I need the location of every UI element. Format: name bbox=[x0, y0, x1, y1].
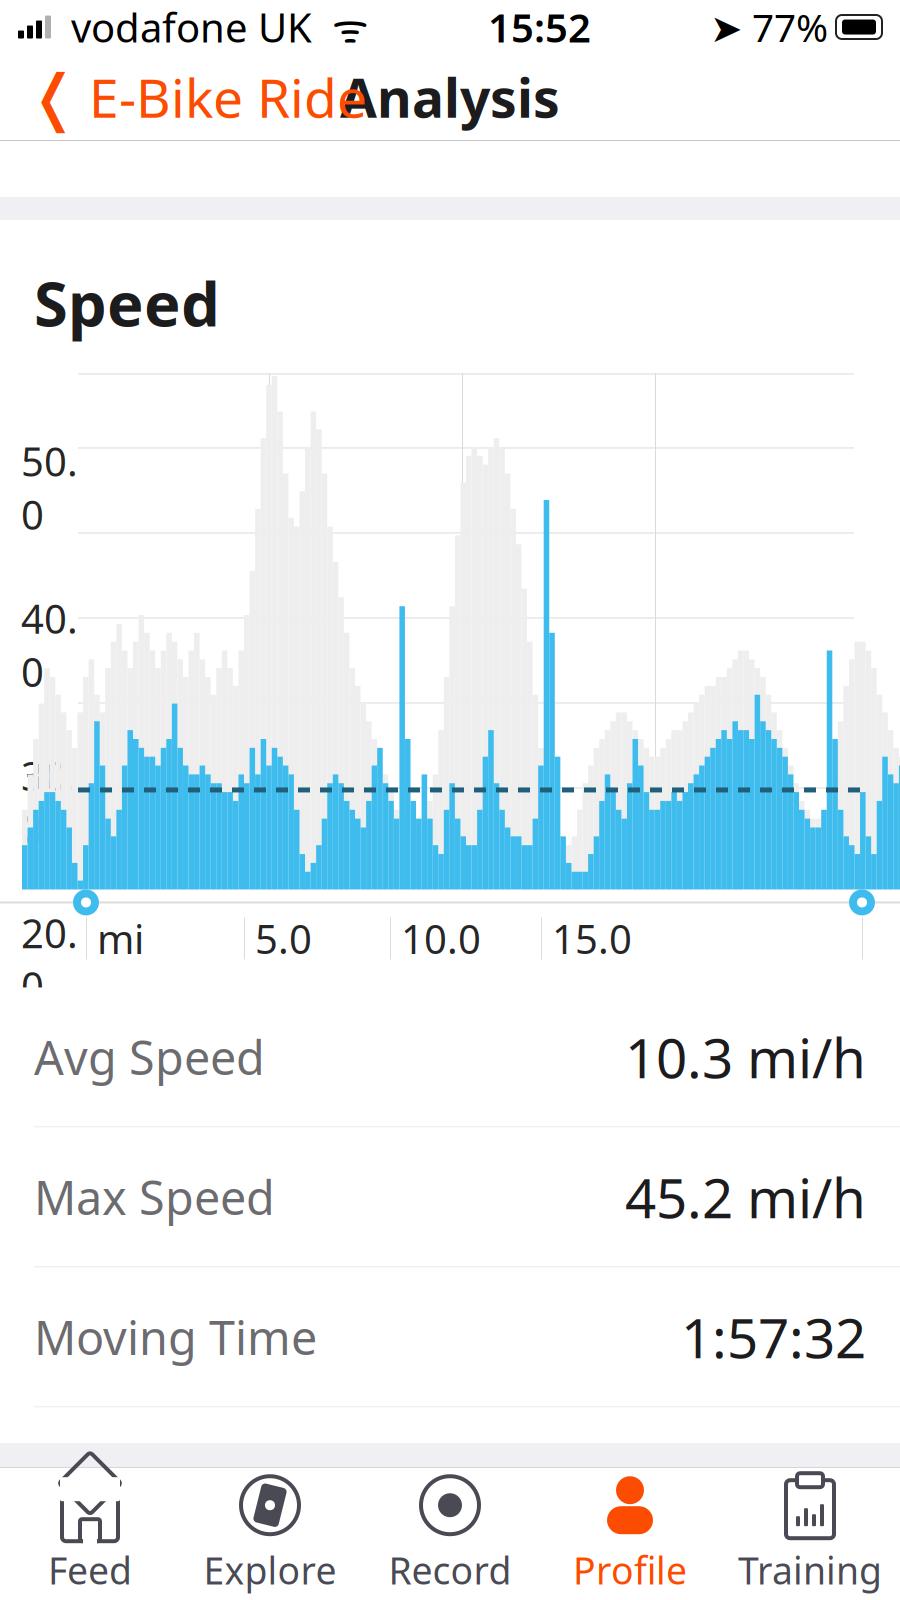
staticText: 1:57:32 bbox=[681, 1301, 866, 1373]
button[interactable]: Moving Time bbox=[0, 1267, 900, 1406]
staticText: Analysis bbox=[340, 62, 560, 132]
button[interactable]: Record bbox=[360, 1469, 540, 1599]
staticText: 45.2 mi/h bbox=[625, 1161, 866, 1233]
staticText: ➤ 77% bbox=[710, 1, 828, 53]
staticText: Training bbox=[738, 1545, 882, 1595]
staticText: E-Bike Ride bbox=[89, 62, 367, 132]
staticText: Record bbox=[388, 1545, 511, 1595]
staticText: Moving Time bbox=[34, 1306, 317, 1368]
staticText: 2:15:47 bbox=[681, 1441, 866, 1513]
staticText: 10.0 bbox=[21, 1063, 78, 1170]
staticText: 10.0 bbox=[391, 912, 481, 965]
button[interactable]: Avg Speed bbox=[0, 987, 900, 1126]
staticText: mi bbox=[87, 912, 144, 965]
staticText: Elapsed Time bbox=[34, 1446, 324, 1508]
staticText: 30.0 bbox=[21, 749, 78, 855]
staticText: Feed bbox=[48, 1545, 132, 1595]
staticText: 15:52 bbox=[488, 0, 591, 53]
staticText: vodafone UK ᯤ bbox=[51, 0, 369, 53]
staticText: Profile bbox=[573, 1545, 687, 1595]
staticText: Speed bbox=[34, 262, 220, 343]
staticText: Max Speed bbox=[34, 1166, 275, 1228]
staticText: 10.3 mi/h bbox=[625, 1021, 866, 1093]
staticText: 40.0 bbox=[21, 592, 78, 698]
button[interactable]: Explore bbox=[180, 1469, 360, 1599]
button[interactable]: ❬ bbox=[0, 54, 395, 140]
staticText: 20.0 bbox=[21, 906, 78, 1012]
staticText: 5.0 bbox=[245, 912, 312, 965]
staticText: ❬ bbox=[28, 62, 79, 132]
button[interactable]: Profile bbox=[540, 1469, 720, 1599]
button[interactable]: Elapsed Time bbox=[0, 1407, 900, 1546]
staticText: Avg Speed bbox=[34, 1026, 265, 1088]
staticText: 15.0 bbox=[542, 912, 632, 965]
button[interactable]: Feed bbox=[0, 1469, 180, 1599]
button[interactable]: Max Speed bbox=[0, 1127, 900, 1266]
staticText: 50.0 bbox=[21, 434, 78, 541]
staticText: Explore bbox=[203, 1545, 336, 1595]
button[interactable]: Training bbox=[720, 1469, 900, 1599]
